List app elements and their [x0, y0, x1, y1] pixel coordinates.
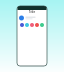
- staticText: Title: [28, 10, 35, 14]
